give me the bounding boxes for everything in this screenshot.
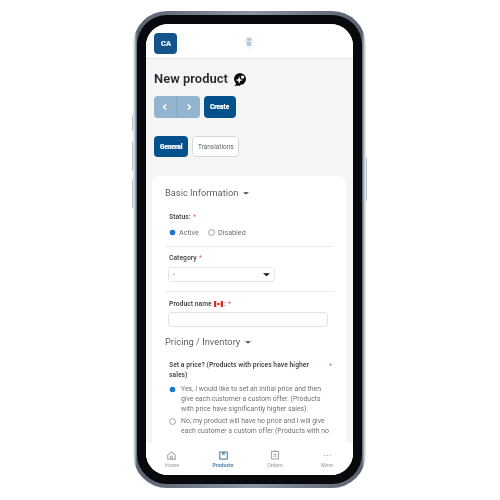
button[interactable]: Pricing / Inventory bbox=[165, 336, 247, 347]
staticText: Pricing / Inventory bbox=[165, 336, 241, 347]
staticText: Status: bbox=[169, 213, 191, 221]
button[interactable]: No, my product will have no price and I … bbox=[169, 417, 333, 434]
staticText: More bbox=[321, 462, 333, 468]
staticText: * bbox=[199, 254, 203, 262]
staticText: Set a price? (Products with prices have … bbox=[169, 361, 317, 378]
button[interactable]: Active bbox=[169, 228, 199, 236]
button[interactable]: Basic Information bbox=[165, 187, 245, 198]
staticText: General bbox=[160, 143, 183, 151]
staticText: Product name bbox=[169, 300, 212, 308]
staticText: * bbox=[329, 362, 333, 370]
button[interactable]: Create bbox=[204, 96, 236, 118]
staticText: Yes, I would like to set an initial pric… bbox=[181, 385, 333, 412]
staticText: Translations bbox=[198, 143, 234, 151]
button[interactable]: Next bbox=[177, 96, 200, 118]
staticText: CA bbox=[161, 39, 171, 48]
staticText: - bbox=[173, 271, 175, 279]
button[interactable]: Orders bbox=[249, 443, 301, 475]
button[interactable]: AI Assistant bbox=[233, 72, 247, 86]
staticText: Orders bbox=[267, 462, 283, 468]
button[interactable]: Disabled bbox=[208, 228, 246, 236]
staticText: Basic Information bbox=[165, 187, 239, 198]
staticText: Active bbox=[179, 228, 199, 236]
staticText: No, my product will have no price and I … bbox=[181, 417, 333, 434]
staticText: Disabled bbox=[218, 228, 246, 236]
button[interactable]: Logo bbox=[245, 36, 253, 49]
staticText: Create bbox=[210, 103, 230, 111]
staticText: : bbox=[224, 300, 226, 308]
button[interactable]: Home bbox=[146, 443, 197, 475]
button[interactable] bbox=[168, 312, 328, 327]
button[interactable]: Yes, I would like to set an initial pric… bbox=[169, 385, 333, 412]
button[interactable]: CA bbox=[154, 33, 177, 54]
staticText: Category bbox=[169, 254, 197, 262]
staticText: Home bbox=[165, 462, 179, 468]
button[interactable]: - bbox=[168, 267, 275, 282]
staticText: * bbox=[193, 213, 197, 221]
button[interactable]: Translations bbox=[192, 136, 239, 157]
button[interactable]: Products bbox=[197, 443, 249, 475]
button[interactable]: More bbox=[301, 443, 353, 475]
staticText: Products bbox=[212, 462, 234, 468]
button[interactable]: General bbox=[154, 136, 188, 157]
staticText: * bbox=[228, 300, 232, 308]
button[interactable]: Previous bbox=[154, 96, 176, 118]
staticText: New product bbox=[154, 71, 228, 86]
